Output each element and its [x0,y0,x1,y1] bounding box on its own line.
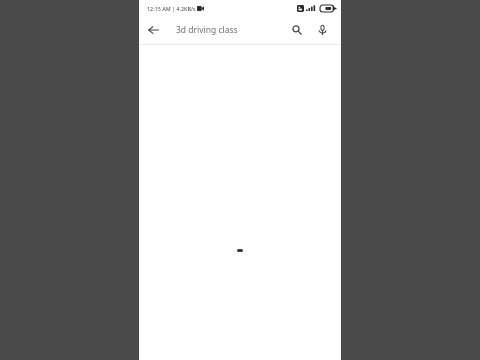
button[interactable]: Back [139,16,168,44]
button[interactable]: Search [285,18,309,42]
staticText: 12:15 AM | 4.2KB/s [147,5,196,12]
button[interactable]: Voice search [310,18,334,42]
staticText: 3d driving class [176,24,238,36]
